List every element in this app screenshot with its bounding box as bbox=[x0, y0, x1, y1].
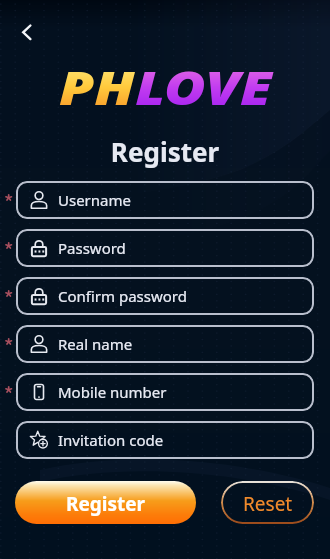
staticText: Password bbox=[58, 238, 126, 258]
staticText: PH bbox=[59, 56, 135, 119]
staticText: Register bbox=[66, 491, 146, 517]
staticText: Username bbox=[58, 190, 131, 210]
button[interactable]: Mobile number bbox=[16, 373, 314, 411]
staticText: Reset bbox=[243, 491, 293, 517]
staticText: Invitation code bbox=[58, 430, 164, 450]
button[interactable]: Invitation code bbox=[16, 421, 314, 459]
button[interactable]: Register bbox=[15, 481, 196, 524]
button[interactable]: Reset bbox=[221, 481, 314, 524]
button[interactable]: Confirm password bbox=[16, 277, 314, 315]
staticText: Mobile number bbox=[58, 382, 167, 402]
button[interactable]: Password bbox=[16, 229, 314, 267]
staticText: Confirm password bbox=[58, 286, 187, 306]
staticText: Register bbox=[0, 134, 330, 169]
staticText: Real name bbox=[58, 334, 133, 354]
button[interactable]: Real name bbox=[16, 325, 314, 363]
button[interactable]: Back bbox=[13, 17, 42, 46]
button[interactable]: Username bbox=[16, 181, 314, 219]
staticText: LOVE bbox=[135, 56, 272, 119]
